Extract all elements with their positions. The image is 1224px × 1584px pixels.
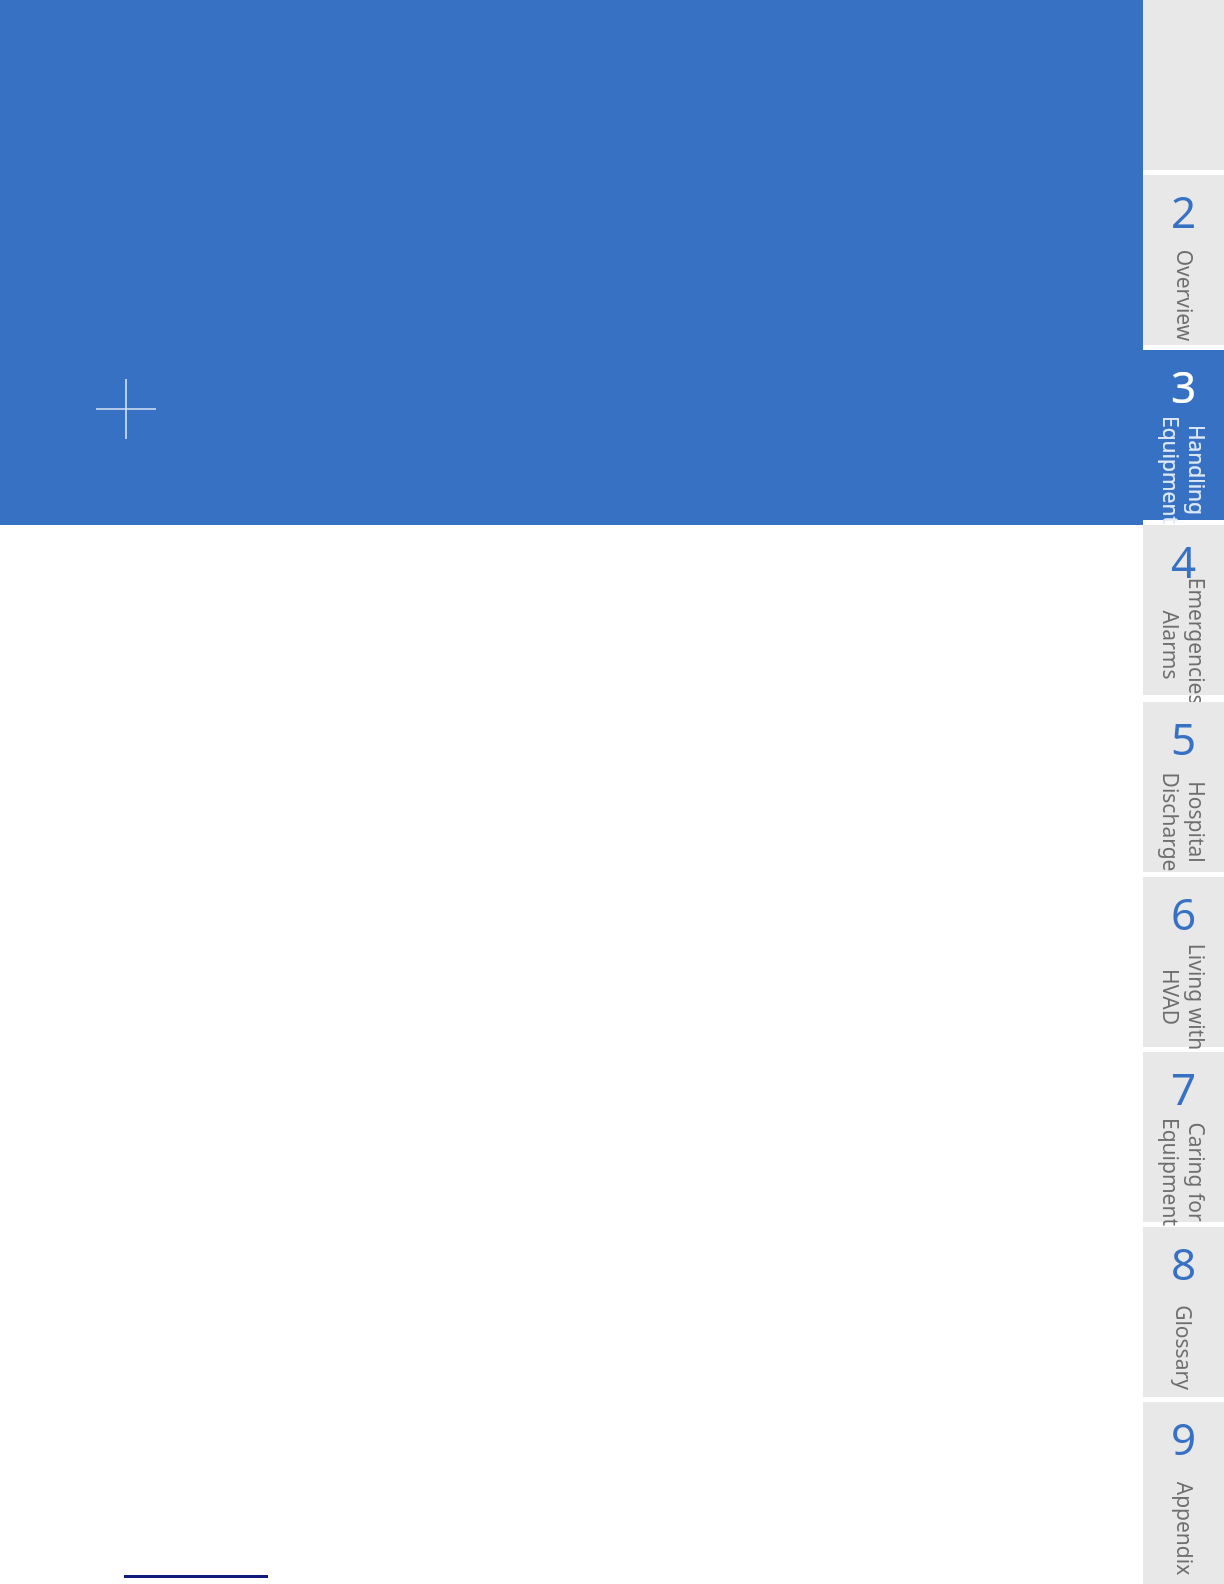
staticText: 4 bbox=[1143, 531, 1224, 591]
button[interactable]: 6 Living with HVAD bbox=[1143, 877, 1224, 1047]
staticText: 6 bbox=[1143, 883, 1224, 943]
staticText: Emergencies/ Alarms bbox=[1156, 577, 1210, 712]
button[interactable]: 2 Overview bbox=[1143, 175, 1224, 345]
button[interactable]: 8 Glossary bbox=[1143, 1227, 1224, 1397]
button[interactable]: 3 Handling Equipment bbox=[1143, 350, 1224, 520]
staticText: Handling Equipment bbox=[1157, 416, 1211, 524]
staticText: 9 bbox=[1143, 1408, 1224, 1468]
staticText: 7 bbox=[1143, 1058, 1224, 1118]
staticText: 5 bbox=[1143, 708, 1224, 768]
button[interactable]: 5 Hospital Discharge bbox=[1143, 702, 1224, 872]
staticText: 2 bbox=[1143, 181, 1224, 241]
staticText: 3 bbox=[1143, 356, 1224, 416]
button[interactable]: 9 Appendix bbox=[1143, 1402, 1224, 1584]
staticText: Glossary bbox=[1169, 1305, 1198, 1390]
staticText: Living with HVAD bbox=[1156, 943, 1210, 1050]
staticText: Hospital Discharge bbox=[1156, 772, 1210, 871]
staticText: Appendix bbox=[1169, 1481, 1198, 1575]
staticText: Overview bbox=[1169, 249, 1198, 341]
staticText: 8 bbox=[1143, 1233, 1224, 1293]
staticText: Caring for Equipment bbox=[1157, 1118, 1211, 1226]
button[interactable]: 4 Emergencies/ Alarms bbox=[1143, 525, 1224, 695]
button[interactable]: 7 Caring for Equipment bbox=[1143, 1052, 1224, 1222]
